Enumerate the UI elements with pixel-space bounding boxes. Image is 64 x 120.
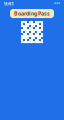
staticText: ••• — [54, 0, 60, 7]
staticText: Boarding Pass — [14, 10, 50, 17]
staticText: 9:41 — [4, 0, 14, 7]
